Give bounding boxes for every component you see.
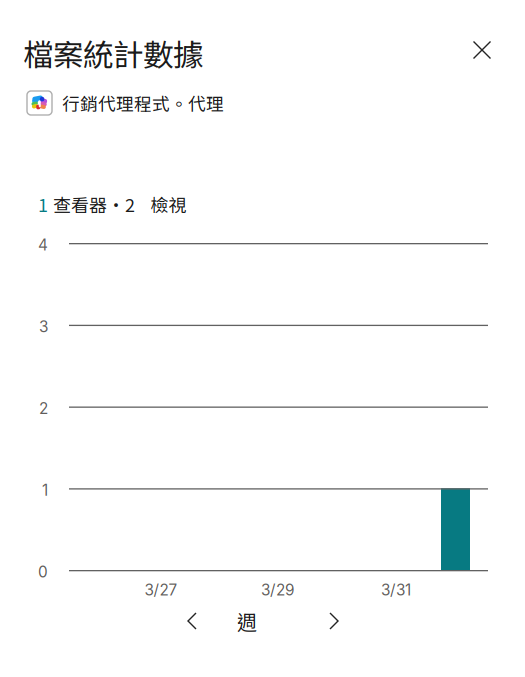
staticText: 3/31: [381, 581, 411, 599]
button[interactable]: 週: [211, 605, 283, 637]
staticText: 1: [42, 481, 48, 500]
staticText: 4: [38, 236, 48, 254]
button[interactable]: 行銷代理程式。代理: [27, 89, 297, 117]
staticText: 查看器•2: [53, 191, 135, 217]
button[interactable]: Close: [460, 28, 504, 72]
button[interactable]: Previous period: [173, 605, 207, 637]
staticText: 行銷代理程式。代理: [62, 90, 224, 116]
staticText: 3: [39, 317, 48, 336]
staticText: 檔案統計數據: [23, 31, 203, 75]
staticText: 週: [237, 606, 257, 635]
staticText: 3/29: [261, 581, 295, 599]
staticText: 2: [39, 399, 48, 418]
staticText: 1: [38, 191, 48, 217]
staticText: 3/27: [144, 581, 177, 599]
staticText: 檢視: [150, 191, 186, 217]
button[interactable]: Next period: [315, 605, 349, 637]
staticText: 0: [38, 563, 48, 581]
